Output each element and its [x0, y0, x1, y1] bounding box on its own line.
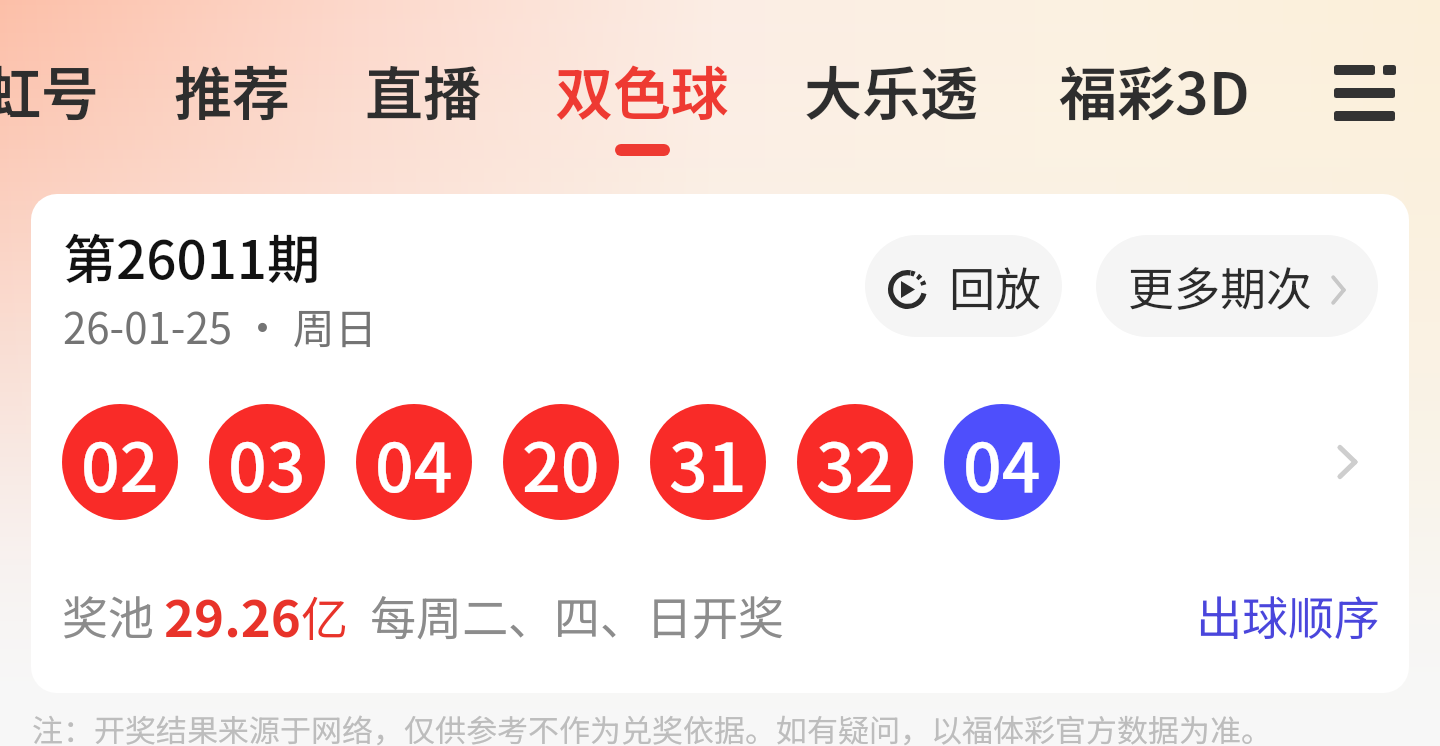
staticText: 20: [522, 413, 600, 511]
staticText: 26-01-25 · 周日: [63, 295, 377, 356]
staticText: 第26011期: [63, 218, 321, 295]
button[interactable]: More results: [1303, 417, 1393, 507]
button[interactable]: 大乐透: [804, 0, 979, 172]
button[interactable]: 更多期次: [1096, 235, 1378, 337]
button[interactable]: 福彩3D: [1059, 0, 1250, 172]
staticText: 03: [228, 413, 306, 511]
staticText: 推荐: [174, 48, 291, 132]
button[interactable]: 双色球: [555, 0, 730, 172]
staticText: 每周二、四、日开奖: [370, 582, 784, 649]
staticText: 大乐透: [804, 48, 979, 132]
button[interactable]: 推荐: [174, 0, 291, 172]
staticText: 04: [375, 413, 453, 511]
button[interactable]: 04: [944, 404, 1060, 520]
button[interactable]: 02: [62, 404, 178, 520]
button[interactable]: 直播: [365, 0, 482, 172]
staticText: 奖池: [62, 582, 154, 649]
staticText: 更多期次: [1128, 253, 1312, 320]
staticText: 29.26: [164, 578, 301, 652]
button[interactable]: 20: [503, 404, 619, 520]
staticText: 注：开奖结果来源于网络，仅供参考不作为兑奖依据。如有疑问，以福体彩官方数据为准。: [32, 706, 1272, 746]
staticText: 31: [669, 413, 747, 511]
button[interactable]: More lottery types: [1303, 0, 1427, 172]
staticText: 双色球: [555, 48, 730, 132]
staticText: 亿: [301, 581, 348, 649]
button[interactable]: 03: [209, 404, 325, 520]
button[interactable]: 出球顺序: [1182, 572, 1394, 658]
staticText: 直播: [365, 48, 482, 132]
staticText: 出球顺序: [1196, 582, 1380, 649]
button[interactable]: 04: [356, 404, 472, 520]
button[interactable]: 回放: [865, 235, 1062, 337]
button[interactable]: 虹号: [0, 0, 100, 172]
staticText: 福彩3D: [1059, 48, 1250, 132]
staticText: 虹号: [0, 48, 100, 132]
staticText: 32: [816, 413, 894, 511]
staticText: 04: [963, 413, 1041, 511]
staticText: 02: [81, 413, 159, 511]
staticText: 回放: [949, 253, 1041, 320]
button[interactable]: 32: [797, 404, 913, 520]
button[interactable]: 31: [650, 404, 766, 520]
